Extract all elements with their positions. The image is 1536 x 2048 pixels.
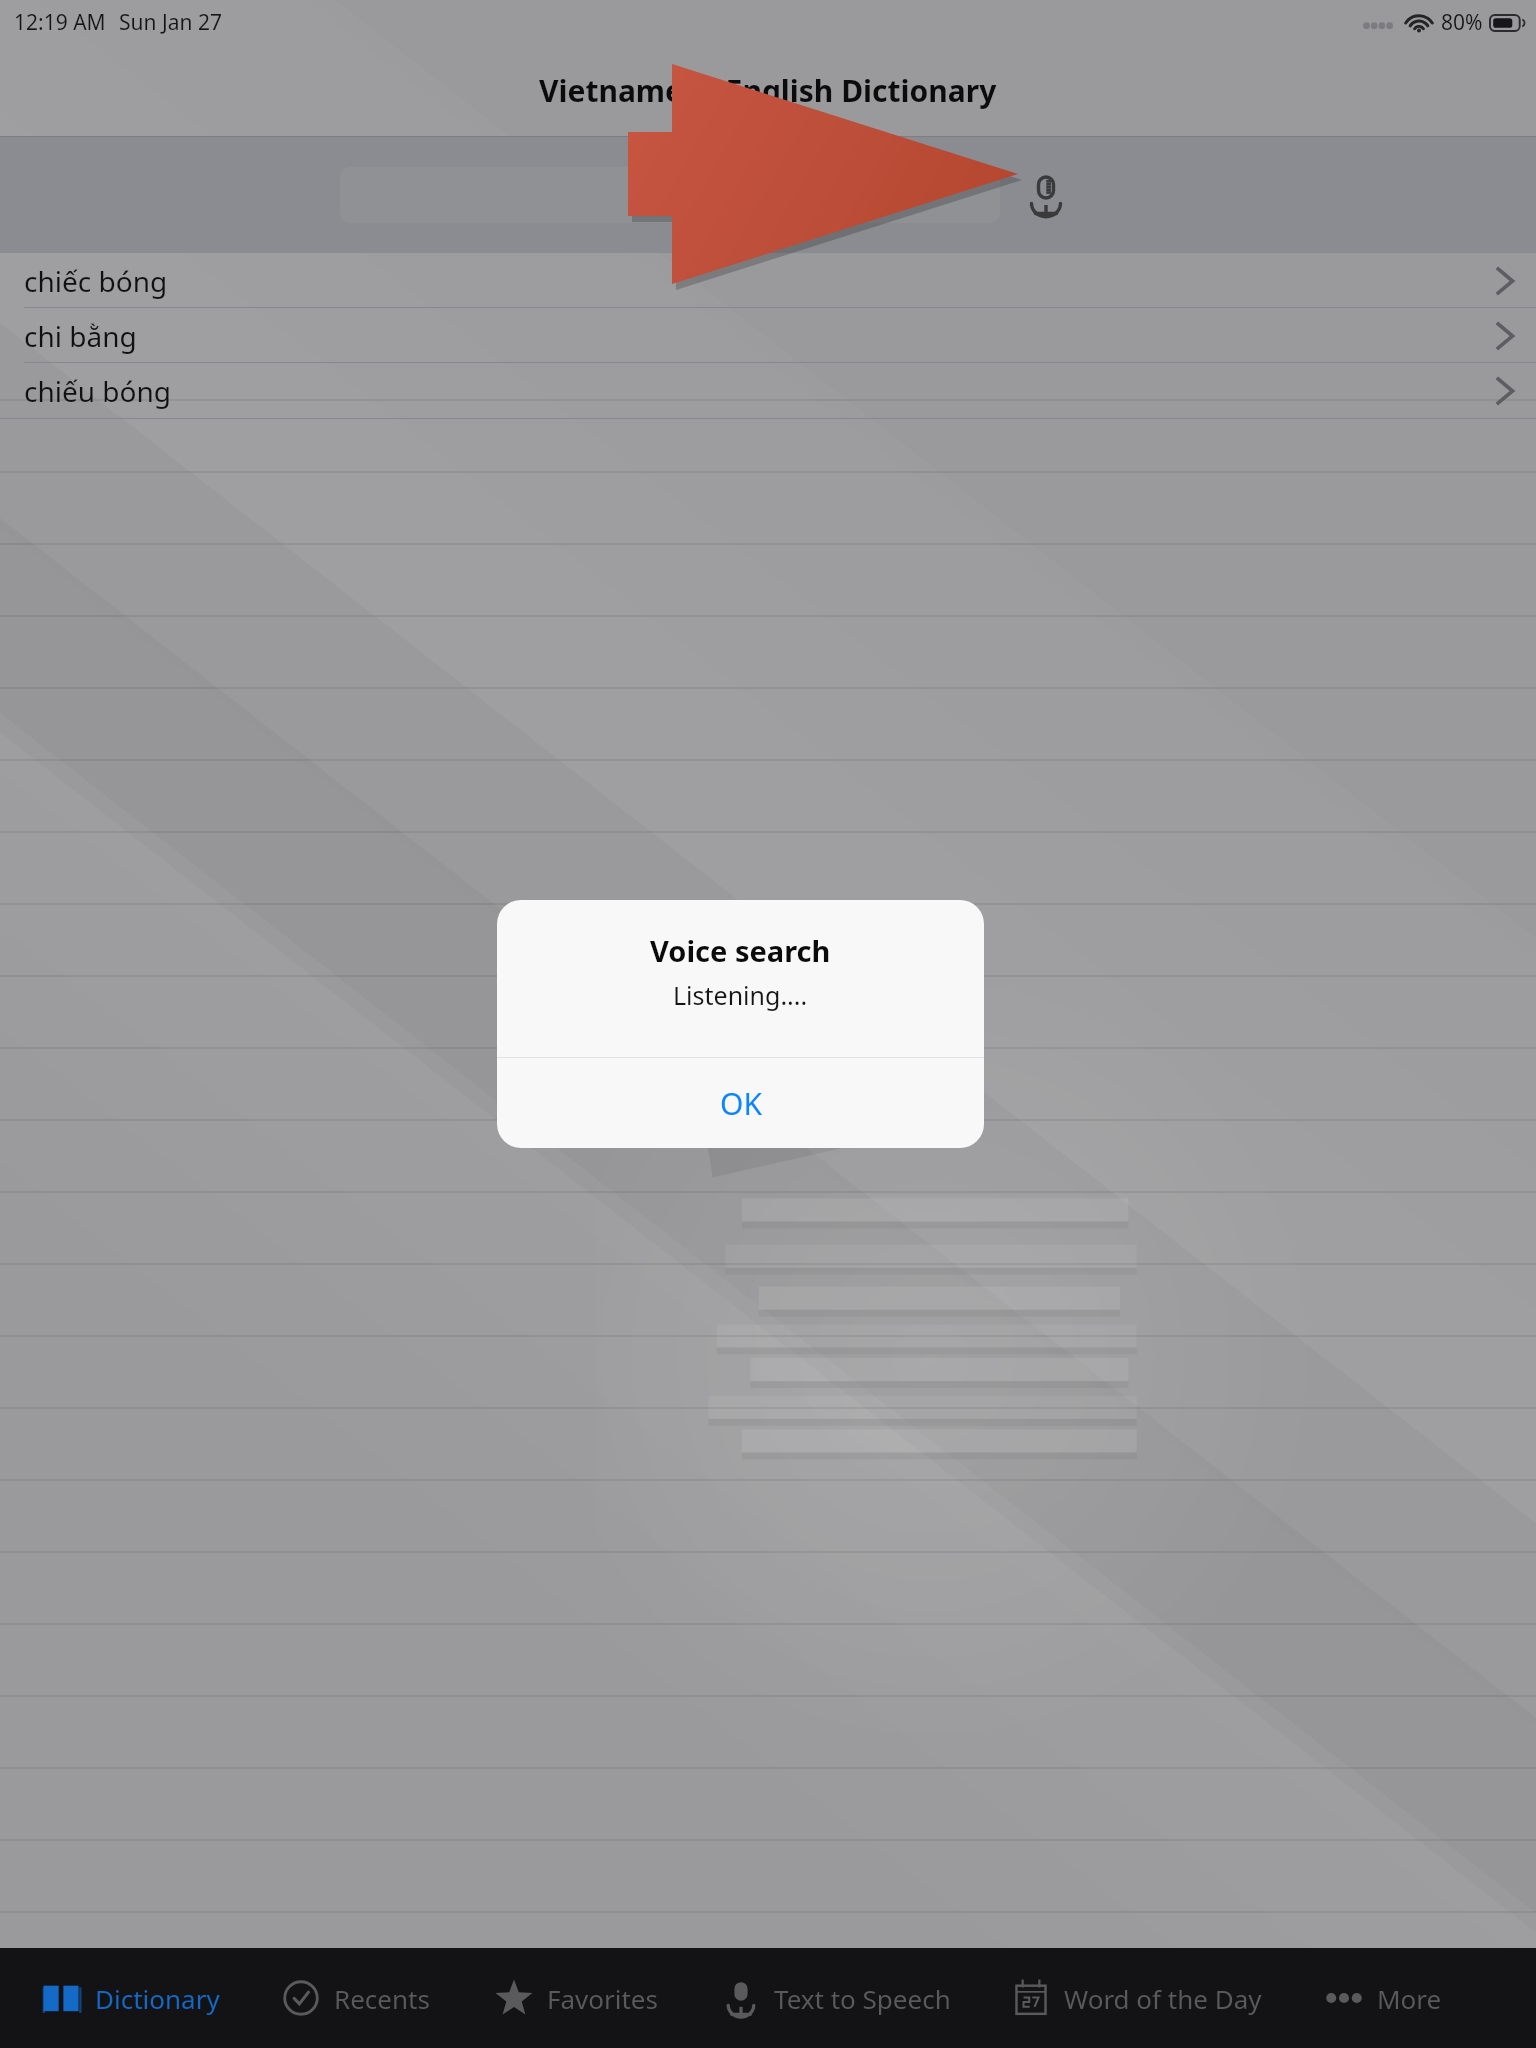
button[interactable]: Favorites [492,1948,719,2048]
staticText: Recents [334,1981,430,2016]
staticText: Text to Speech [774,1981,951,2016]
staticText: Vietnamese-English Dictionary [539,70,997,111]
button[interactable]: chi bằng [0,308,1536,363]
staticText: Favorites [547,1981,658,2016]
staticText: 12:19 AM [14,8,106,37]
staticText: chiếc bóng [24,262,168,300]
staticText: 80% [1441,8,1483,37]
button[interactable]: Word of the Day [1009,1948,1322,2048]
button[interactable]: More [1322,1948,1512,2048]
staticText: Sun Jan 27 [119,8,222,37]
staticText: More [1377,1981,1442,2016]
button[interactable]: Text to Speech [719,1948,1009,2048]
staticText: chi bằng [24,317,137,355]
button[interactable]: chiếc bóng [0,253,1536,308]
button[interactable]: chiếu bóng [0,363,1536,418]
button[interactable]: Recents [279,1948,492,2048]
button[interactable]: Dictionary [40,1948,279,2048]
staticText: Voice search [650,931,831,970]
staticText: chiếu bóng [24,372,172,410]
staticText: Word of the Day [1064,1981,1262,2016]
staticText: OK [720,1083,762,1124]
staticText: Listening.... [673,978,808,1012]
button[interactable] [340,167,1000,223]
button[interactable]: OK [497,1058,984,1148]
button[interactable]: Voice search microphone [1008,157,1084,233]
staticText: Dictionary [95,1981,220,2016]
